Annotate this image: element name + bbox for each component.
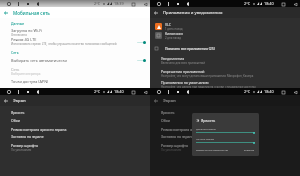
- button[interactable]: Apps: [173, 0, 183, 7]
- button[interactable]: Приложения по умолчанию: [150, 80, 300, 89]
- button[interactable]: Recents: [131, 90, 135, 94]
- button[interactable]: Back: [293, 2, 297, 6]
- button[interactable]: Экран: [150, 95, 300, 106]
- staticText: Режим контроля яркости экрана: [161, 127, 217, 132]
- staticText: По умолчанию: [161, 148, 182, 152]
- button[interactable]: Кинопоиск: [150, 31, 300, 40]
- button[interactable]: Мобильная сеть: [0, 7, 150, 18]
- button[interactable]: Volume: [33, 88, 42, 95]
- staticText: Режим 4G LTE: [11, 37, 37, 42]
- button[interactable]: Заставка на экране: [150, 134, 300, 139]
- staticText: Приложения и уведомления: [163, 10, 223, 16]
- button[interactable]: Режим 4G LTE: [0, 37, 150, 46]
- staticText: 18:40: [114, 89, 124, 94]
- staticText: ЗАКРЫТЬ: [244, 149, 255, 152]
- staticText: Экран: [163, 98, 176, 104]
- staticText: Кинопоиск: [165, 31, 183, 36]
- button[interactable]: Recents: [131, 2, 135, 6]
- staticText: Уведомления: [161, 56, 185, 61]
- button[interactable]: Режим контроля яркости экрана: [0, 127, 150, 132]
- button[interactable]: Приложения и уведомления: [150, 7, 300, 18]
- button[interactable]: Menu: [13, 88, 23, 95]
- button[interactable]: Home: [154, 0, 163, 7]
- button[interactable]: Home: [4, 88, 13, 95]
- button[interactable]: Apps: [23, 88, 33, 95]
- button[interactable]: Экран: [0, 95, 150, 106]
- button[interactable]: Toggle: [135, 57, 146, 63]
- button[interactable]: Яркость: [0, 110, 150, 115]
- staticText: 18:40: [264, 89, 274, 94]
- button[interactable]: Recents: [281, 90, 285, 94]
- button[interactable]: Обои: [0, 118, 150, 123]
- staticText: Точки доступа (APN): [11, 79, 49, 84]
- staticText: Сеть: [11, 67, 20, 72]
- staticText: VLC: [165, 22, 171, 27]
- staticText: Выберите оператора: [11, 72, 41, 76]
- button[interactable]: Режим контроля яркости экрана: [150, 127, 300, 132]
- staticText: Яркость: [11, 110, 25, 115]
- button[interactable]: Выбирать сеть автоматически: [0, 57, 150, 63]
- button[interactable]: Размер шрифта: [0, 143, 150, 152]
- button[interactable]: СБРОСИТЬ ПО УМОЛЧАНИЮ: [196, 149, 229, 152]
- button[interactable]: Back: [143, 2, 147, 6]
- button[interactable]: Размер шрифта: [150, 143, 300, 152]
- button[interactable]: Recents: [281, 2, 285, 6]
- staticText: По умолчанию: [11, 148, 32, 152]
- staticText: Данные: [11, 21, 25, 26]
- staticText: 2 дня назад: [165, 36, 181, 40]
- staticText: Сеть: [11, 50, 19, 55]
- staticText: Загрузка по Wi-Fi: [11, 28, 43, 33]
- button[interactable]: Загрузка по Wi-Fi: [0, 28, 150, 37]
- button[interactable]: Menu: [13, 0, 23, 7]
- staticText: Режим контроля яркости экрана: [11, 127, 67, 132]
- button[interactable]: Back: [293, 90, 297, 94]
- button[interactable]: Volume: [183, 0, 192, 7]
- button[interactable]: Menu: [163, 0, 173, 7]
- button[interactable]: Home: [154, 88, 163, 95]
- staticText: Мобильная сеть: [13, 10, 50, 16]
- button[interactable]: Volume: [33, 0, 42, 7]
- staticText: Обои: [11, 118, 21, 123]
- staticText: Яркость: [201, 118, 216, 123]
- staticText: Размер шрифта: [161, 143, 188, 148]
- staticText: Показать все приложения (25): [165, 46, 215, 51]
- button[interactable]: Menu: [163, 88, 173, 95]
- staticText: Заставка на экране: [11, 134, 44, 139]
- staticText: Заставка на экране: [161, 134, 194, 139]
- staticText: Экран: [13, 98, 26, 104]
- staticText: 2°C: [244, 89, 251, 94]
- button[interactable]: Точки доступа (APN): [0, 79, 150, 84]
- staticText: Включено для всех приложений: [161, 61, 205, 65]
- button[interactable]: Toggle: [135, 39, 146, 45]
- button[interactable]: Back: [143, 90, 147, 94]
- staticText: Настройте, что могут делать ваши приложе…: [161, 74, 254, 78]
- button[interactable]: ЗАКРЫТЬ: [244, 149, 255, 152]
- staticText: Дневной режим: [196, 127, 216, 130]
- staticText: 1 день назад: [165, 27, 183, 31]
- staticText: Настройте, что делать при нажатии на ссы…: [161, 85, 256, 89]
- staticText: 18:40: [264, 1, 274, 6]
- button[interactable]: Обои: [150, 118, 300, 123]
- button[interactable]: Apps: [23, 0, 33, 7]
- staticText: Использовать сервис LTE, чтобы улучшить …: [11, 42, 117, 46]
- staticText: 18:39: [114, 1, 124, 6]
- button[interactable]: Заставка на экране: [0, 134, 150, 139]
- button[interactable]: Volume: [183, 88, 192, 95]
- staticText: 2°C: [94, 89, 101, 94]
- staticText: Разрешения приложений: [161, 69, 205, 74]
- staticText: 2°C: [244, 1, 251, 6]
- button[interactable]: VLC: [150, 22, 300, 31]
- button[interactable]: Home: [4, 0, 13, 7]
- staticText: Ночной режим: [196, 137, 215, 140]
- button[interactable]: Сеть: [0, 67, 150, 76]
- button[interactable]: Показать все приложения (25): [150, 46, 300, 51]
- button[interactable]: Яркость: [150, 110, 300, 115]
- staticText: Выбирать сеть автоматически: [11, 58, 67, 63]
- staticText: Яркость: [161, 110, 175, 115]
- button[interactable]: Уведомления: [150, 56, 300, 65]
- button[interactable]: Apps: [173, 88, 183, 95]
- button[interactable]: Разрешения приложений: [150, 69, 300, 78]
- staticText: Размер шрифта: [11, 143, 38, 148]
- staticText: СБРОСИТЬ ПО УМОЛЧАНИЮ: [196, 149, 229, 152]
- staticText: Обои: [161, 118, 171, 123]
